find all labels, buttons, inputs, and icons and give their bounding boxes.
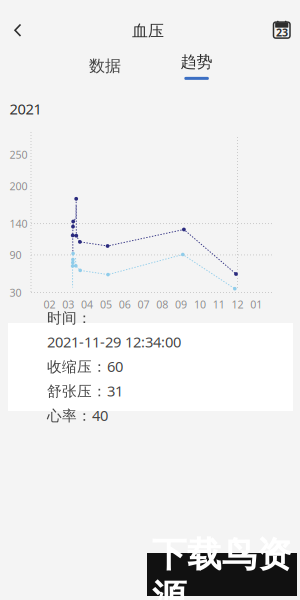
staticText: 下载鸟资源 — [152, 533, 292, 600]
staticText: 07 — [137, 297, 149, 311]
staticText: 23 — [276, 25, 288, 39]
staticText: 心率：40 — [47, 405, 108, 425]
staticText: 200 — [9, 179, 27, 193]
staticText: 数据 — [89, 56, 121, 76]
button[interactable]: Calendar — [262, 0, 300, 42]
staticText: 收缩压：60 — [47, 356, 123, 376]
staticText: 05 — [100, 297, 112, 311]
staticText: 08 — [156, 297, 168, 311]
staticText: 2021-11-29 12:34:00 — [47, 332, 181, 352]
button[interactable]: Back — [0, 0, 33, 42]
staticText: 250 — [9, 148, 27, 162]
staticText: 2021 — [9, 99, 41, 119]
staticText: 趋势 — [181, 52, 213, 72]
staticText: 04 — [81, 297, 93, 311]
staticText: 140 — [9, 216, 27, 231]
staticText: 09 — [175, 297, 187, 311]
staticText: 11 — [213, 297, 225, 311]
staticText: 12 — [231, 297, 243, 311]
staticText: 时间： — [47, 309, 92, 327]
staticText: 10 — [194, 297, 206, 311]
button[interactable]: 数据 — [62, 49, 148, 83]
staticText: 01 — [250, 297, 262, 311]
staticText: 02 — [43, 297, 55, 311]
staticText: 血压 — [132, 21, 164, 41]
staticText: 90 — [9, 248, 21, 262]
button[interactable]: 趋势 — [154, 49, 240, 83]
staticText: 06 — [119, 297, 131, 311]
staticText: 03 — [62, 297, 74, 311]
staticText: 舒张压：31 — [47, 381, 123, 400]
staticText: 30 — [9, 285, 21, 300]
